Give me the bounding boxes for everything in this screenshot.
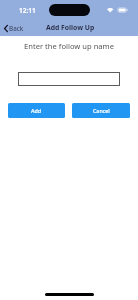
staticText: Add xyxy=(31,107,42,114)
staticText: 12:11 xyxy=(19,6,36,15)
staticText: Add Follow Up xyxy=(46,23,95,32)
button[interactable]: Back xyxy=(3,21,25,35)
button[interactable]: Add xyxy=(8,103,65,118)
staticText: Enter the follow up name xyxy=(0,41,138,51)
button[interactable]: Cancel xyxy=(72,103,130,118)
button[interactable] xyxy=(18,72,120,86)
staticText: Cancel xyxy=(93,107,110,114)
staticText: Back xyxy=(9,24,24,33)
